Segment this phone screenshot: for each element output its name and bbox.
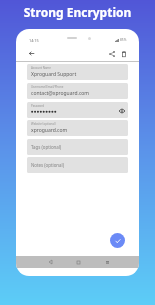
staticText: Xproguard Support — [31, 71, 77, 78]
button[interactable]: Recents — [103, 258, 111, 266]
button[interactable]: Website (optional) — [27, 120, 128, 136]
button[interactable]: Back — [26, 48, 37, 59]
staticText: contact@xproguard.com — [31, 90, 89, 97]
staticText: Username/Email/Phone — [31, 85, 64, 89]
staticText: 14:15 — [29, 38, 39, 43]
staticText: Notes (optional) — [31, 162, 64, 168]
button[interactable]: Back — [46, 258, 54, 266]
staticText: Strong Encryption — [0, 4, 155, 20]
button[interactable]: Username/Email/Phone — [27, 83, 128, 99]
button[interactable]: Account Name — [27, 64, 128, 80]
staticText: 85% — [120, 38, 127, 42]
button[interactable]: Share — [106, 48, 117, 59]
staticText: Password — [31, 104, 45, 108]
button[interactable]: Home — [74, 258, 82, 266]
button[interactable]: Delete — [118, 48, 129, 59]
button[interactable]: Notes (optional) — [27, 157, 128, 173]
button[interactable]: Save — [110, 233, 125, 248]
staticText: Tags (optional) — [31, 144, 62, 150]
staticText: Account Name — [31, 66, 51, 70]
staticText: xproguard.com — [31, 127, 68, 134]
button[interactable]: Tags (optional) — [27, 139, 128, 155]
staticText: Website (optional) — [31, 122, 56, 126]
button[interactable]: Password — [27, 102, 128, 118]
